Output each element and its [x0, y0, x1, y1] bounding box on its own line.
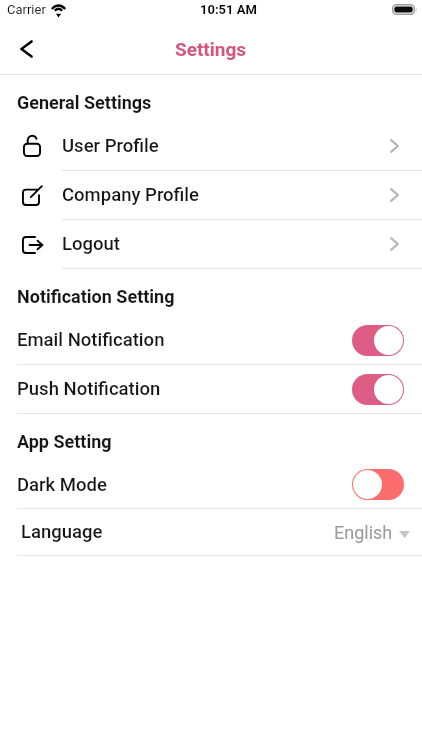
button[interactable]: Email Notification — [0, 316, 422, 365]
staticText: Email Notification — [17, 329, 165, 351]
button[interactable]: Language — [0, 509, 422, 556]
staticText: User Profile — [62, 135, 159, 157]
button[interactable]: Back — [8, 31, 44, 67]
button[interactable]: User Profile — [0, 122, 422, 171]
staticText: Settings — [175, 38, 247, 60]
staticText: English — [334, 522, 393, 543]
staticText: General Settings — [17, 92, 152, 113]
button[interactable]: Push Notification — [0, 365, 422, 414]
button[interactable]: Push Notification on — [352, 374, 404, 405]
staticText: Logout — [62, 233, 121, 255]
staticText: Language — [21, 521, 103, 543]
button[interactable]: Logout — [0, 220, 422, 269]
staticText: Notification Setting — [17, 286, 175, 307]
button[interactable]: Dark Mode — [0, 461, 422, 509]
button[interactable]: Company Profile — [0, 171, 422, 220]
staticText: 10:51 AM — [200, 2, 257, 17]
staticText: Dark Mode — [17, 474, 107, 496]
button[interactable]: Dark Mode off — [352, 469, 404, 500]
staticText: Carrier — [7, 2, 46, 17]
button[interactable]: Email Notification on — [352, 325, 404, 356]
staticText: Push Notification — [17, 378, 161, 400]
staticText: Company Profile — [62, 184, 200, 206]
staticText: App Setting — [17, 431, 112, 452]
